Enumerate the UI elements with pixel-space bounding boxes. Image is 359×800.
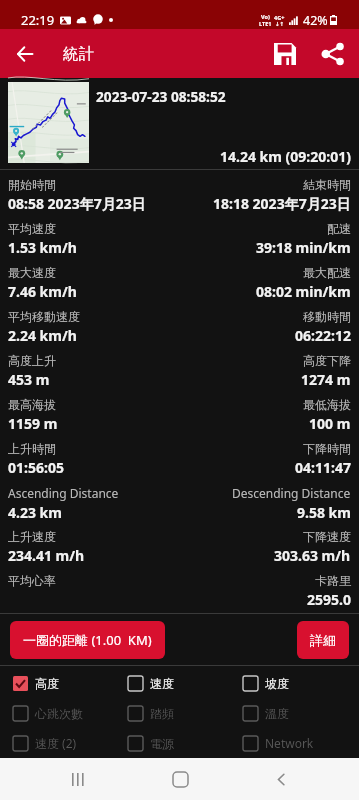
button[interactable]: 開始時間 [0,173,359,217]
staticText: 08:58 2023年7月23日 [8,194,146,213]
staticText: 42% [303,12,328,29]
button[interactable]: 平均心率 [0,569,359,613]
staticText: 高度 [35,676,59,691]
staticText: 39:18 min/km [256,238,351,257]
staticText: 統計 [63,44,94,64]
staticText: 最大速度 [8,265,56,280]
staticText: ↓↑ [275,21,285,27]
button[interactable]: 踏頻 [115,698,230,728]
staticText: 234.41 m/h [8,546,85,565]
button[interactable]: Back [7,36,43,72]
staticText: 22:19 [21,11,55,29]
staticText: 速度 (2) [35,735,77,751]
staticText: Ascending Distance [8,485,119,501]
staticText: Descending Distance [232,485,351,501]
staticText: 平均心率 [8,573,56,588]
staticText: 最高海拔 [8,397,56,412]
staticText: 溫度 [265,706,289,721]
button[interactable]: 上升時間 [0,437,359,481]
staticText: 1.53 km/h [8,238,77,257]
button[interactable]: 心跳次數 [0,698,115,728]
staticText: Network [265,735,314,751]
staticText: 踏頻 [150,706,174,721]
button[interactable]: Share [314,35,352,73]
button[interactable]: Ascending Distance [0,481,359,525]
staticText: 453 m [8,370,50,389]
staticText: 平均移動速度 [8,309,80,324]
staticText: 最大配速 [303,265,351,280]
staticText: 上升速度 [8,529,56,544]
button[interactable]: Network [230,728,345,758]
button[interactable]: Home [156,758,204,800]
staticText: 坡度 [265,676,289,691]
button[interactable]: 上升速度 [0,525,359,569]
button[interactable]: 速度 (2) [0,728,115,758]
staticText: 卡路里 [315,573,351,588]
staticText: 下降速度 [303,529,351,544]
staticText: 詳細 [310,632,336,648]
staticText: 04:11:47 [295,458,351,477]
staticText: 06:22:12 [295,326,351,345]
staticText: 上升時間 [8,441,56,456]
staticText: 速度 [150,676,174,691]
staticText: 7.46 km/h [8,282,77,301]
staticText: 移動時間 [303,309,351,324]
button[interactable]: Back [257,758,305,800]
button[interactable]: Save [266,35,304,73]
button[interactable]: 最高海拔 [0,393,359,437]
staticText: 一圈的距離 (1.00 KM) [23,631,152,649]
staticText: Vo) [261,13,270,20]
staticText: 4.23 km [8,503,62,522]
staticText: 9.58 km [297,503,351,522]
staticText: 2023-07-23 08:58:52 [96,87,226,106]
button[interactable]: 速度 [115,668,230,698]
button[interactable]: 高度 [0,668,115,698]
staticText: 100 m [309,414,351,433]
button[interactable]: 電源 [115,728,230,758]
button[interactable]: 平均移動速度 [0,305,359,349]
button[interactable]: 最大速度 [0,261,359,305]
staticText: 結束時間 [303,177,351,192]
staticText: 下降時間 [303,441,351,456]
button[interactable]: Recents [54,758,102,800]
staticText: 開始時間 [8,177,56,192]
staticText: 高度下降 [303,353,351,368]
staticText: 01:56:05 [8,458,64,477]
button[interactable]: 坡度 [230,668,345,698]
staticText: 303.63 m/h [274,546,351,565]
button[interactable]: 詳細 [297,621,349,659]
staticText: 4G+ [274,14,285,21]
staticText: 心跳次數 [35,706,83,721]
staticText: 1274 m [301,370,351,389]
button[interactable]: 平均速度 [0,217,359,261]
staticText: 1159 m [8,414,58,433]
staticText: 配速 [327,221,351,236]
staticText: 14.24 km (09:20:01) [220,147,351,166]
staticText: 18:18 2023年7月23日 [213,194,351,213]
staticText: 2595.0 [307,590,351,609]
button[interactable]: 一圈的距離 (1.00 KM) [10,621,165,659]
staticText: 平均速度 [8,221,56,236]
staticText: 電源 [150,736,174,751]
staticText: 最低海拔 [303,397,351,412]
staticText: LTE1 [259,20,272,27]
staticText: 2.24 km/h [8,326,77,345]
button[interactable]: 高度上升 [0,349,359,393]
staticText: 高度上升 [8,353,56,368]
staticText: 08:02 min/km [256,282,351,301]
button[interactable]: 溫度 [230,698,345,728]
